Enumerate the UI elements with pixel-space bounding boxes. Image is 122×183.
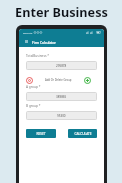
staticText: Firm Calculator bbox=[32, 40, 57, 44]
staticText: B group * bbox=[26, 104, 41, 108]
staticText: 9:27 PM bbox=[23, 31, 33, 34]
button[interactable]: 389865 bbox=[26, 92, 97, 101]
staticText: 295878 bbox=[56, 64, 67, 68]
button[interactable]: Delete group bbox=[26, 77, 33, 84]
staticText: TotalBusiness * bbox=[26, 54, 50, 58]
staticText: A group * bbox=[26, 85, 41, 89]
staticText: RESET bbox=[36, 132, 46, 136]
button[interactable]: 95300 bbox=[26, 111, 97, 120]
button[interactable]: 295878 bbox=[26, 61, 97, 70]
staticText: Add Or Delete Group bbox=[45, 78, 72, 82]
button[interactable]: Add group bbox=[83, 76, 91, 84]
staticText: CALCULATE bbox=[74, 132, 92, 136]
staticText: 95300 bbox=[57, 114, 66, 118]
button[interactable]: Open navigation menu bbox=[23, 38, 30, 45]
staticText: Enter Business bbox=[15, 3, 108, 20]
button[interactable]: CALCULATE bbox=[68, 129, 97, 138]
button[interactable]: RESET bbox=[26, 129, 56, 138]
staticText: 389865 bbox=[56, 95, 67, 99]
